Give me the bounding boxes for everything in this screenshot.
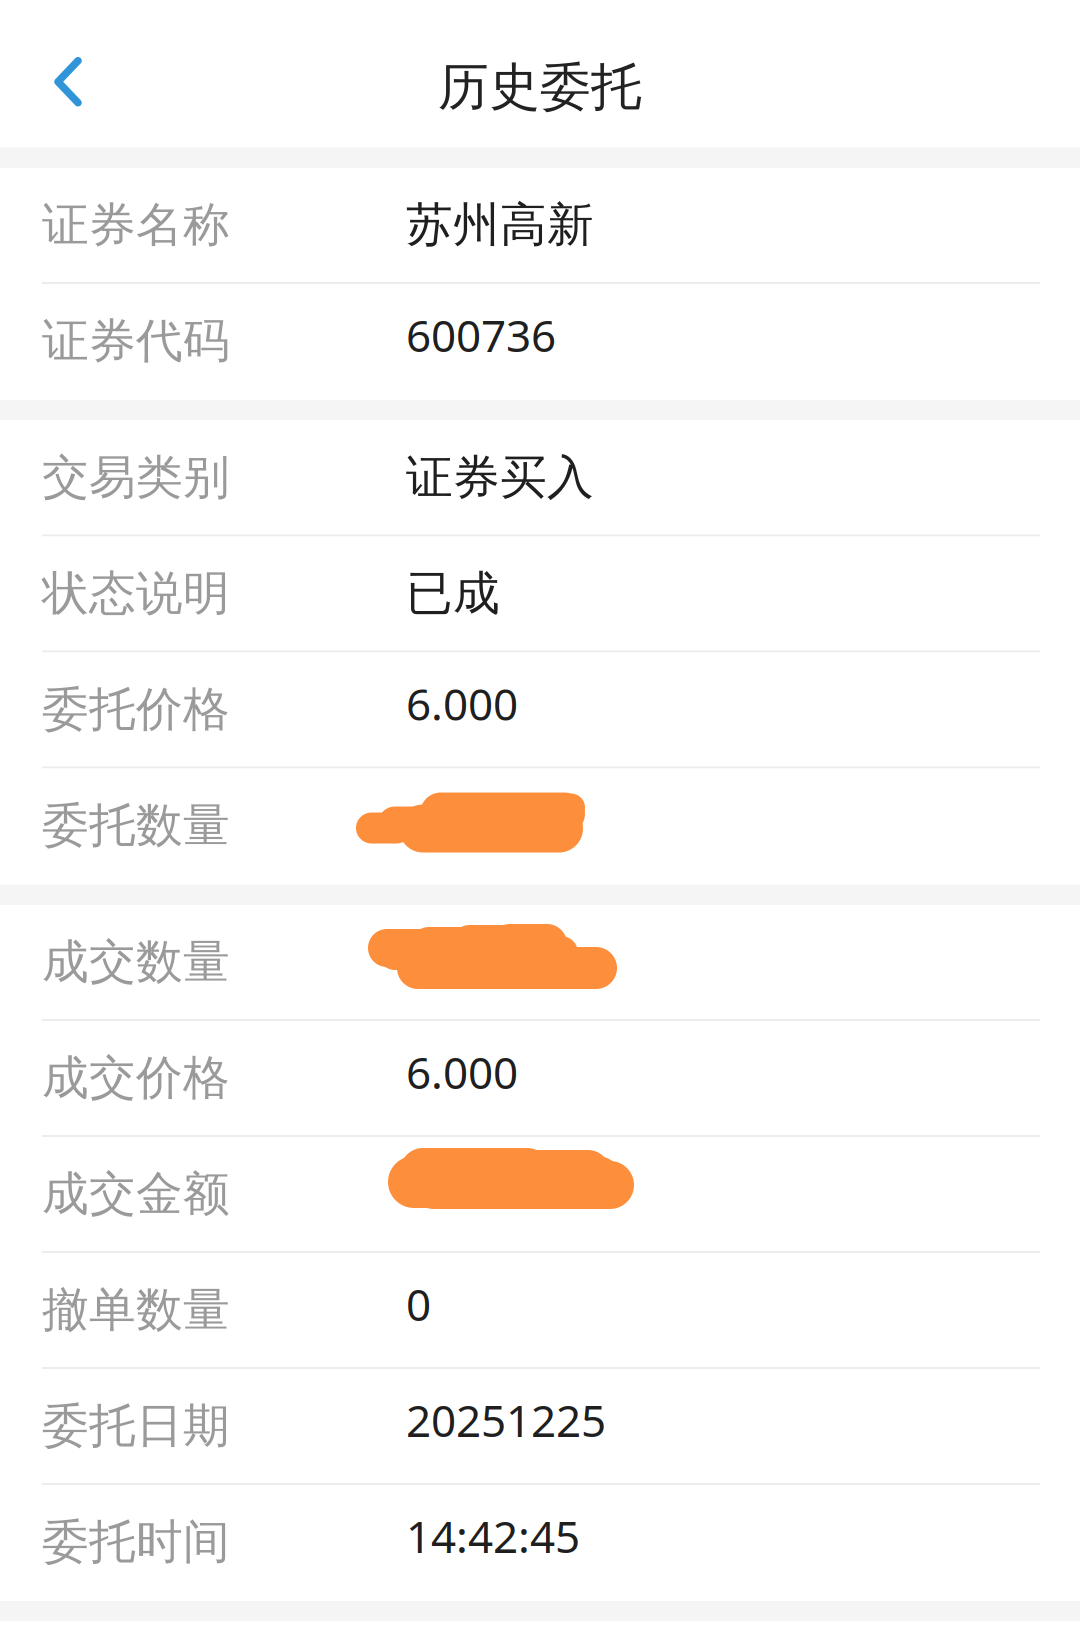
- button[interactable]: Back: [0, 16, 140, 147]
- staticText: 6.000: [406, 1043, 518, 1101]
- staticText: 委托数量: [42, 797, 230, 854]
- staticText: 证券代码: [42, 312, 230, 370]
- staticText: 交易类别: [42, 449, 230, 506]
- staticText: 600736: [406, 306, 556, 364]
- staticText: 14:42:45: [406, 1507, 580, 1565]
- staticText: 委托日期: [42, 1397, 230, 1455]
- staticText: 委托时间: [42, 1513, 230, 1571]
- staticText: 6.000: [406, 674, 518, 733]
- staticText: 苏州高新: [406, 196, 594, 254]
- staticText: 成交数量: [42, 933, 230, 991]
- staticText: 委托价格: [42, 681, 230, 738]
- staticText: 撤单数量: [42, 1281, 230, 1339]
- staticText: 证券名称: [42, 196, 230, 254]
- staticText: 已成: [406, 565, 500, 622]
- staticText: 状态说明: [42, 565, 230, 622]
- staticText: 0: [406, 1275, 431, 1333]
- staticText: 证券买入: [406, 449, 594, 506]
- staticText: 20251225: [406, 1391, 606, 1449]
- staticText: 成交价格: [42, 1049, 230, 1107]
- staticText: 历史委托: [438, 56, 642, 118]
- staticText: 成交金额: [42, 1165, 230, 1223]
